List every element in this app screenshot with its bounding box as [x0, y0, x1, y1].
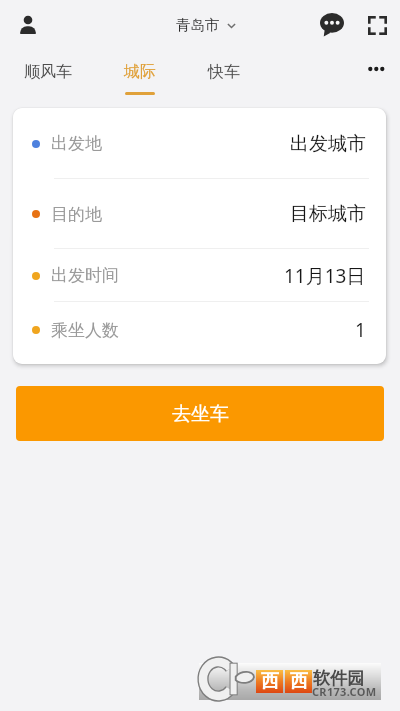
staticText: 西	[261, 670, 279, 693]
button[interactable]: 出发地	[13, 108, 386, 179]
staticText: 顺风车	[24, 62, 72, 82]
button[interactable]: 城际	[114, 50, 166, 96]
staticText: 目的地	[51, 204, 102, 225]
staticText: 西	[290, 670, 308, 693]
button[interactable]: 快车	[198, 50, 250, 96]
staticText: 快车	[208, 62, 240, 82]
staticText: 出发时间	[51, 265, 119, 286]
staticText: 去坐车	[172, 402, 229, 426]
button[interactable]: 出发时间	[13, 249, 386, 302]
button[interactable]: 去坐车	[16, 386, 384, 441]
staticText: 11月13日	[284, 263, 366, 289]
staticText: 出发城市	[290, 132, 366, 156]
button[interactable]: More options	[357, 50, 393, 88]
staticText: CR173.COM	[312, 684, 377, 699]
button[interactable]: 乘坐人数	[13, 302, 386, 364]
button[interactable]: 青岛市	[174, 12, 238, 38]
button[interactable]: Scan	[359, 7, 395, 43]
staticText: 出发地	[51, 133, 102, 154]
button[interactable]: 顺风车	[14, 50, 82, 96]
staticText: 1	[355, 317, 366, 343]
staticText: 乘坐人数	[51, 320, 119, 341]
button[interactable]: Messages	[314, 7, 350, 43]
button[interactable]: Profile	[10, 7, 46, 43]
button[interactable]: 目的地	[13, 179, 386, 249]
staticText: 目标城市	[290, 202, 366, 226]
staticText: 软件园	[313, 668, 364, 689]
staticText: 青岛市	[176, 16, 220, 34]
staticText: 城际	[124, 62, 156, 82]
